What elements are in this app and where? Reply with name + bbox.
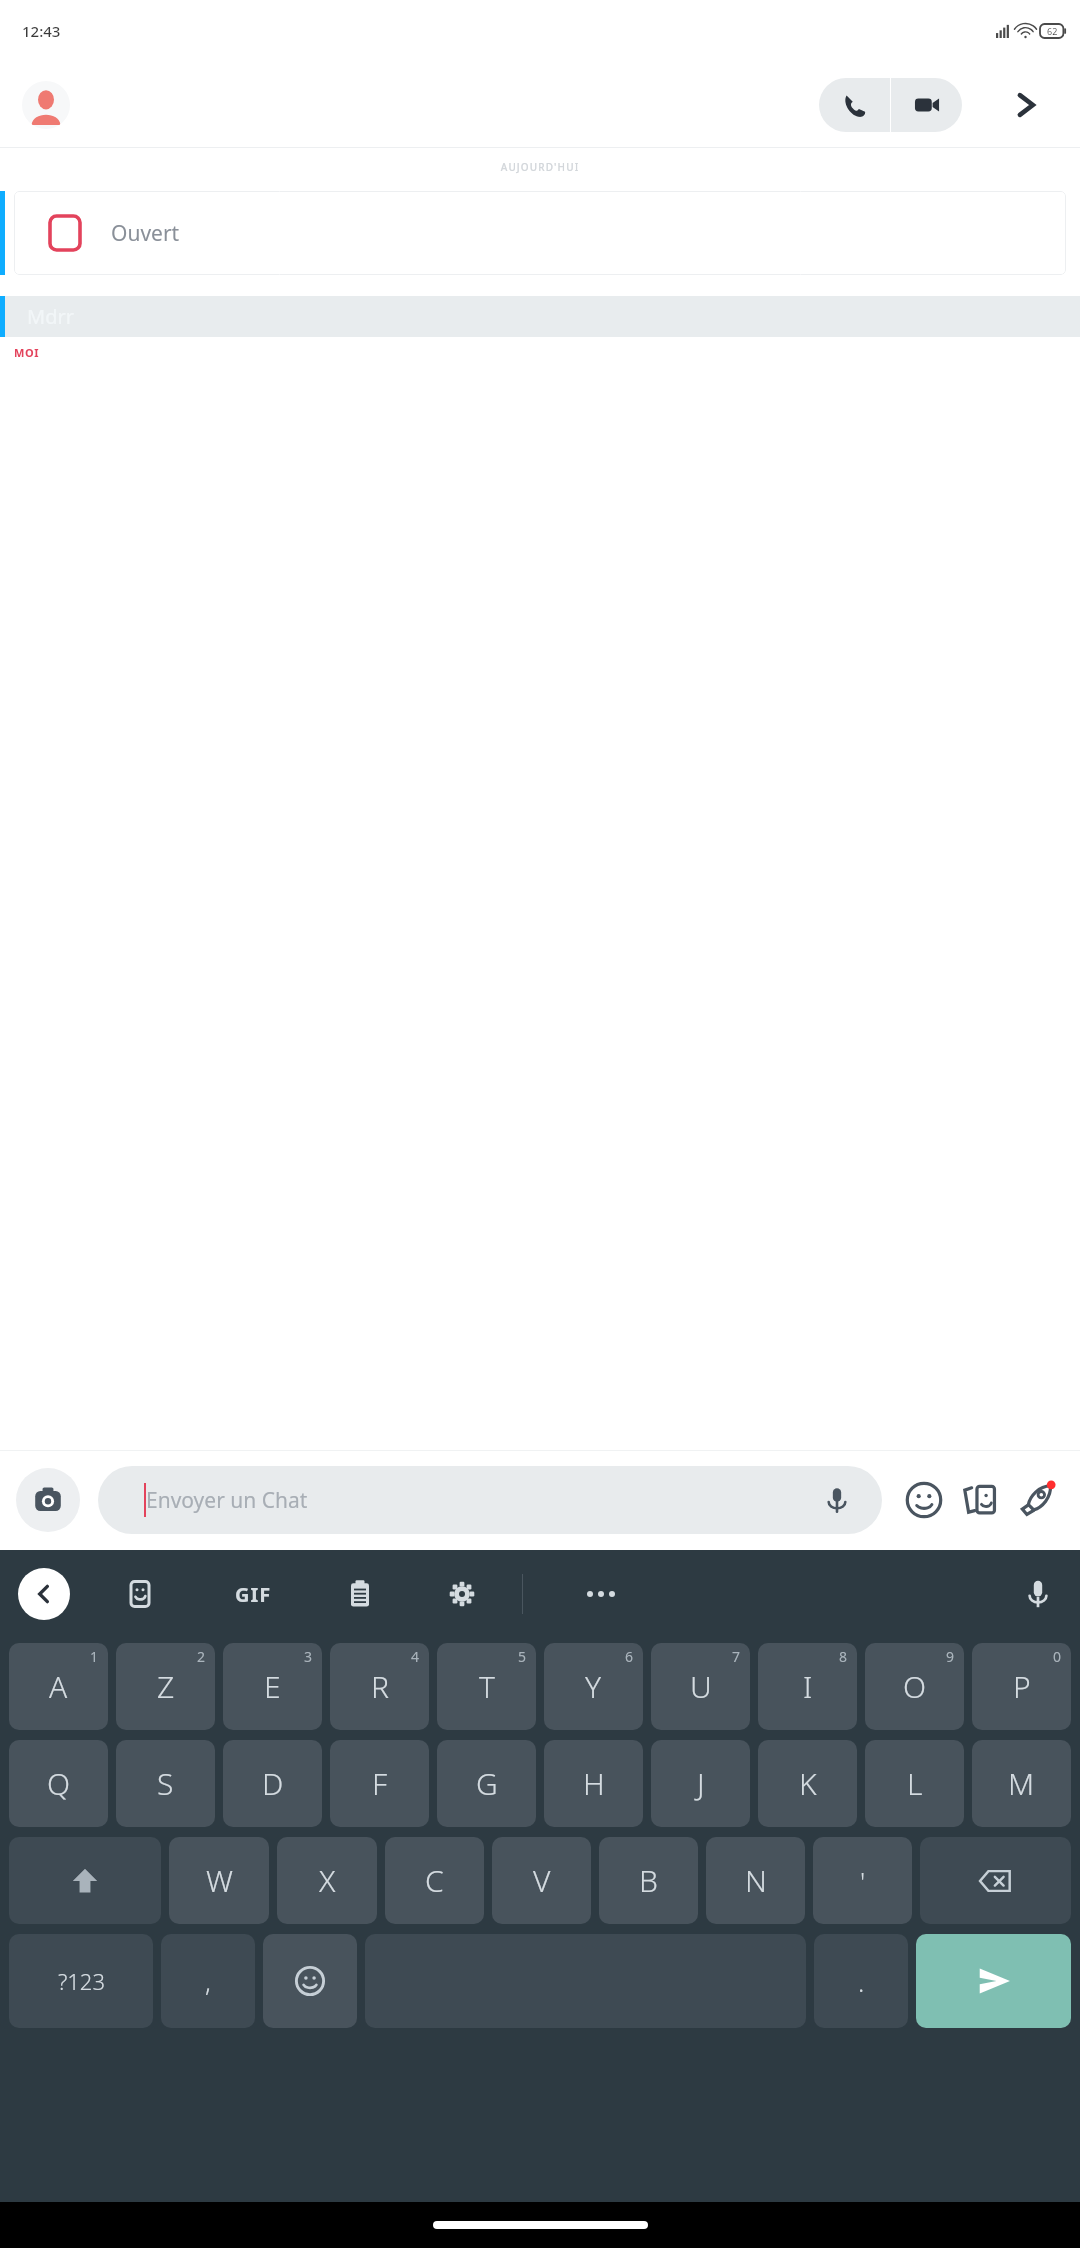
staticText: Z bbox=[157, 1666, 175, 1707]
button[interactable]: J bbox=[651, 1740, 750, 1827]
staticText: Q bbox=[47, 1763, 71, 1804]
button[interactable]: , bbox=[161, 1934, 255, 2028]
button[interactable]: Micro bbox=[818, 1481, 856, 1519]
staticText: A bbox=[49, 1666, 68, 1707]
button[interactable]: Presse-papiers bbox=[330, 1564, 390, 1624]
staticText: C bbox=[425, 1860, 444, 1901]
button[interactable]: H bbox=[544, 1740, 643, 1827]
staticText: GIF bbox=[235, 1581, 272, 1608]
staticText: N bbox=[745, 1860, 767, 1901]
button[interactable]: ' bbox=[813, 1837, 912, 1924]
button[interactable]: Stickers bbox=[110, 1564, 170, 1624]
staticText: 7 bbox=[732, 1647, 741, 1666]
button[interactable]: A bbox=[9, 1643, 108, 1730]
button[interactable]: Profil bbox=[22, 81, 70, 129]
button[interactable]: Plus d'options bbox=[571, 1564, 631, 1624]
button[interactable]: C bbox=[385, 1837, 484, 1924]
button[interactable]: X bbox=[277, 1837, 377, 1924]
staticText: 3 bbox=[304, 1647, 313, 1666]
button[interactable]: Emoji bbox=[263, 1934, 357, 2028]
button[interactable]: Majuscule bbox=[9, 1837, 161, 1924]
button[interactable]: Paramètres bbox=[432, 1564, 492, 1624]
staticText: S bbox=[157, 1763, 174, 1804]
staticText: 2 bbox=[197, 1647, 206, 1666]
button[interactable]: V bbox=[492, 1837, 591, 1924]
staticText: K bbox=[799, 1763, 817, 1804]
staticText: L bbox=[907, 1763, 923, 1804]
staticText: E bbox=[264, 1666, 281, 1707]
button[interactable]: Y bbox=[544, 1643, 643, 1730]
button[interactable]: ?123 bbox=[9, 1934, 153, 2028]
staticText: 62 bbox=[1047, 25, 1058, 37]
button[interactable]: Cartes bbox=[952, 1472, 1008, 1528]
staticText: Ouvert bbox=[111, 219, 180, 248]
button[interactable]: Dictée vocale bbox=[1008, 1564, 1068, 1624]
staticText: W bbox=[206, 1860, 233, 1901]
staticText: 1 bbox=[90, 1647, 99, 1666]
staticText: ' bbox=[860, 1863, 866, 1898]
button[interactable]: Retour bbox=[18, 1568, 70, 1620]
button[interactable]: Stickers bbox=[896, 1472, 952, 1528]
staticText: 4 bbox=[411, 1647, 420, 1666]
staticText: MOI bbox=[14, 345, 40, 360]
button[interactable]: P bbox=[972, 1643, 1071, 1730]
staticText: H bbox=[583, 1763, 605, 1804]
staticText: 9 bbox=[946, 1647, 955, 1666]
button[interactable]: Appel vidéo bbox=[891, 78, 962, 132]
button[interactable]: M bbox=[972, 1740, 1071, 1827]
button[interactable]: I bbox=[758, 1643, 857, 1730]
button[interactable]: Q bbox=[9, 1740, 108, 1827]
button[interactable]: L bbox=[865, 1740, 964, 1827]
staticText: M bbox=[1008, 1763, 1035, 1804]
staticText: 6 bbox=[625, 1647, 634, 1666]
staticText: U bbox=[690, 1666, 712, 1707]
staticText: B bbox=[639, 1860, 658, 1901]
staticText: T bbox=[479, 1666, 495, 1707]
button[interactable]: K bbox=[758, 1740, 857, 1827]
button[interactable]: D bbox=[223, 1740, 322, 1827]
staticText: G bbox=[476, 1763, 498, 1804]
staticText: ?123 bbox=[58, 1966, 105, 1996]
button[interactable]: Suivant bbox=[998, 78, 1052, 132]
button[interactable]: Fusée bbox=[1008, 1472, 1064, 1528]
staticText: 0 bbox=[1053, 1647, 1062, 1666]
button[interactable]: T bbox=[437, 1643, 536, 1730]
button[interactable]: Appareil photo bbox=[16, 1468, 80, 1532]
button[interactable]: . bbox=[814, 1934, 908, 2028]
staticText: R bbox=[371, 1666, 389, 1707]
staticText: F bbox=[372, 1763, 388, 1804]
button[interactable]: R bbox=[330, 1643, 429, 1730]
button[interactable]: N bbox=[706, 1837, 805, 1924]
staticText: , bbox=[205, 1964, 211, 1999]
button[interactable]: GIF bbox=[218, 1559, 288, 1629]
button[interactable]: W bbox=[169, 1837, 269, 1924]
staticText: D bbox=[262, 1763, 284, 1804]
staticText: Y bbox=[585, 1666, 602, 1707]
button[interactable]: Envoyer un Chat bbox=[98, 1466, 882, 1534]
button[interactable]: Supprimer bbox=[920, 1837, 1071, 1924]
staticText: P bbox=[1013, 1666, 1031, 1707]
button[interactable]: E bbox=[223, 1643, 322, 1730]
button[interactable]: Appel audio bbox=[819, 78, 890, 132]
button[interactable]: Z bbox=[116, 1643, 215, 1730]
button[interactable]: G bbox=[437, 1740, 536, 1827]
staticText: 8 bbox=[839, 1647, 848, 1666]
staticText: 5 bbox=[518, 1647, 527, 1666]
staticText: I bbox=[803, 1666, 813, 1707]
button[interactable]: B bbox=[599, 1837, 698, 1924]
staticText: O bbox=[903, 1666, 927, 1707]
button[interactable]: O bbox=[865, 1643, 964, 1730]
staticText: V bbox=[533, 1860, 551, 1901]
staticText: AUJOURD'HUI bbox=[0, 160, 1080, 174]
button[interactable]: Mdrr bbox=[0, 296, 1080, 337]
button[interactable]: F bbox=[330, 1740, 429, 1827]
staticText: J bbox=[697, 1763, 705, 1804]
button[interactable]: Ouvert bbox=[0, 191, 1066, 275]
button[interactable]: S bbox=[116, 1740, 215, 1827]
button[interactable]: Envoyer bbox=[916, 1934, 1071, 2028]
staticText: X bbox=[319, 1860, 336, 1901]
staticText: Envoyer un Chat bbox=[146, 1486, 308, 1515]
button[interactable]: U bbox=[651, 1643, 750, 1730]
staticText: Mdrr bbox=[27, 303, 74, 330]
